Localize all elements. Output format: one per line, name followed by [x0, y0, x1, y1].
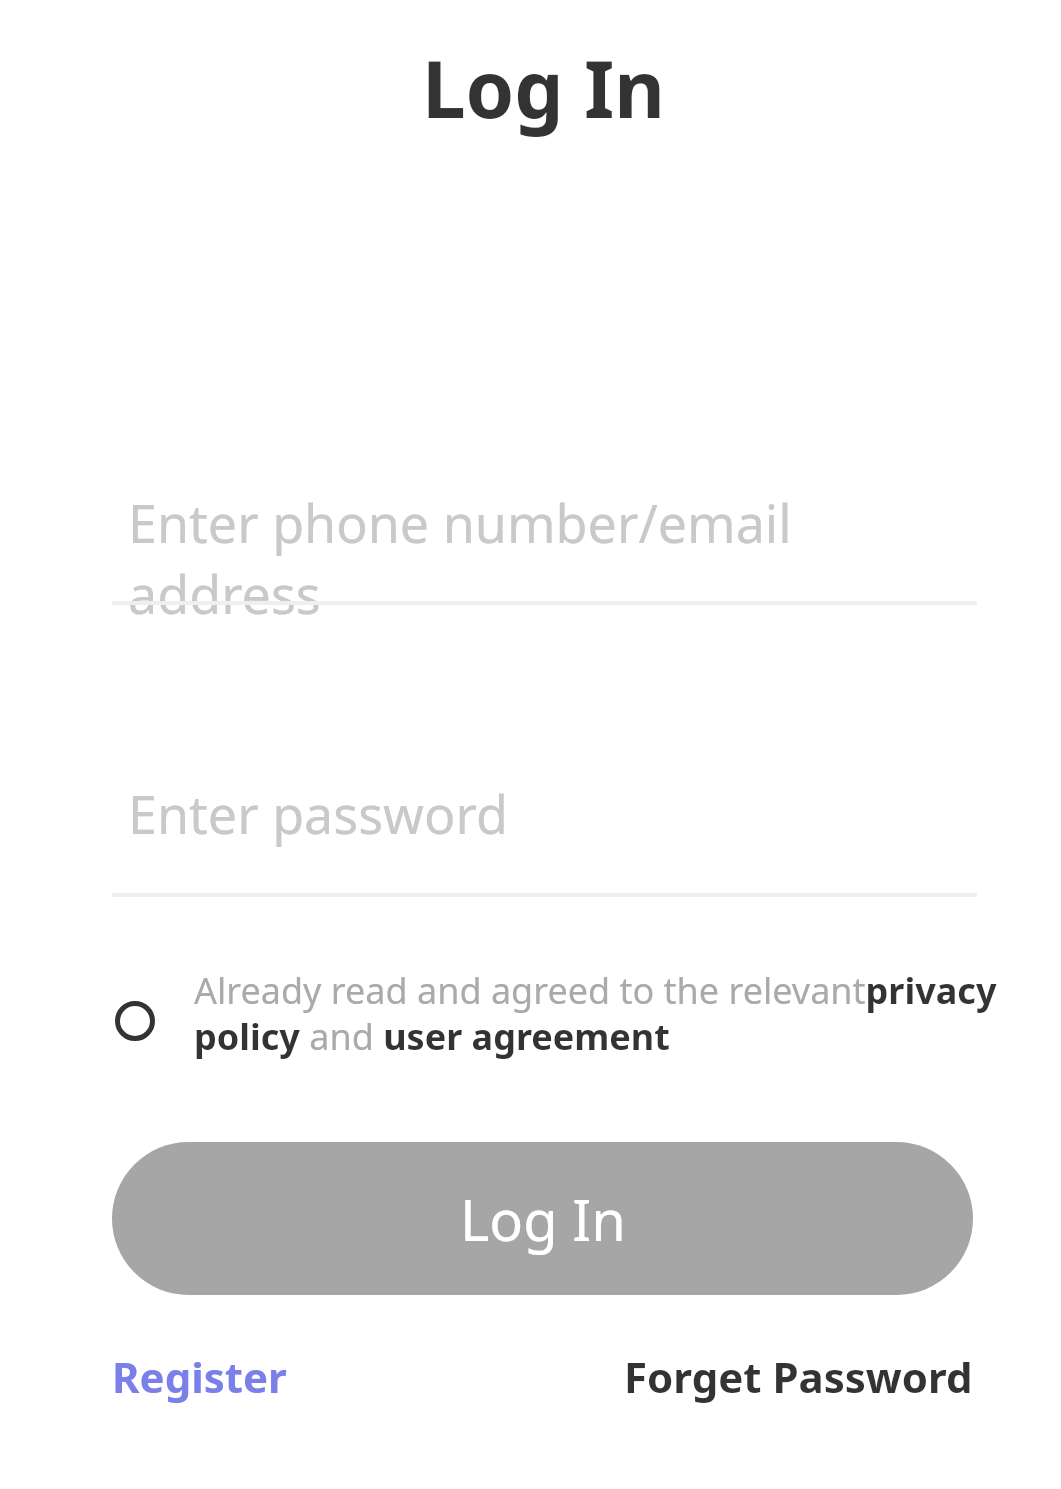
- button[interactable]: Register: [112, 1348, 287, 1405]
- button[interactable]: Enter phone number/email address: [112, 470, 977, 605]
- staticText: Register: [112, 1348, 287, 1405]
- button[interactable]: Already read and agreed to the relevantp…: [194, 966, 1021, 1061]
- button[interactable]: Log In: [112, 1142, 973, 1295]
- staticText: Forget Password: [624, 1348, 973, 1405]
- staticText: Enter password: [128, 778, 508, 849]
- staticText: Log In: [13, 35, 1061, 141]
- staticText: Log In: [460, 1181, 626, 1257]
- staticText: Enter phone number/email address: [128, 487, 993, 622]
- staticText: Already read and agreed to the relevantp…: [194, 966, 1021, 1061]
- button[interactable]: Agree to privacy policy and user agreeme…: [112, 998, 158, 1044]
- button[interactable]: Enter password: [112, 760, 977, 897]
- button[interactable]: Forget Password: [624, 1348, 973, 1405]
